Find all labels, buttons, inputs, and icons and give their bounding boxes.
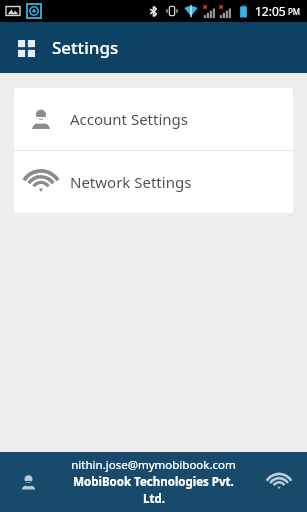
button[interactable]: Network status — [263, 466, 295, 498]
staticText: PM — [288, 6, 301, 17]
button[interactable]: Apps menu — [8, 30, 44, 66]
button[interactable]: Network Settings — [14, 151, 293, 213]
staticText: Settings — [52, 36, 119, 59]
button[interactable]: Account Settings — [14, 88, 293, 150]
staticText: Account Settings — [70, 109, 188, 129]
staticText: Network Settings — [70, 172, 192, 192]
staticText: nithin.jose@mymobibook.com — [71, 457, 236, 473]
staticText: 12:05 — [255, 3, 286, 19]
staticText: Ltd. — [143, 491, 165, 507]
button[interactable]: Account — [12, 466, 44, 498]
staticText: MobiBook Technologies Pvt. — [73, 474, 234, 490]
